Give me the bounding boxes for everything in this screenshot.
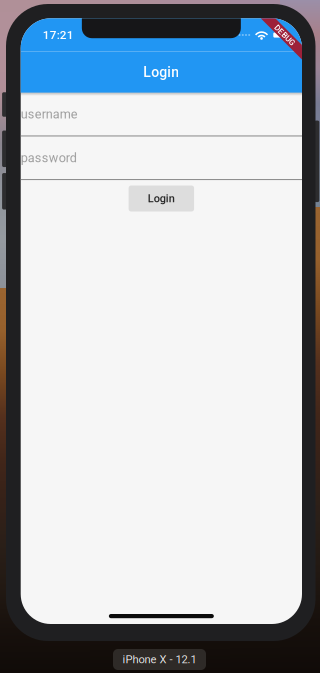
button[interactable]: Login bbox=[129, 185, 194, 211]
staticText: password bbox=[21, 150, 77, 165]
staticText: Login bbox=[148, 192, 175, 205]
staticText: 17:21 bbox=[43, 28, 74, 42]
staticText: iPhone X - 12.1 bbox=[122, 653, 196, 666]
staticText: Login bbox=[143, 64, 179, 80]
staticText: DEBUG bbox=[272, 30, 298, 40]
staticText: username bbox=[21, 107, 78, 121]
